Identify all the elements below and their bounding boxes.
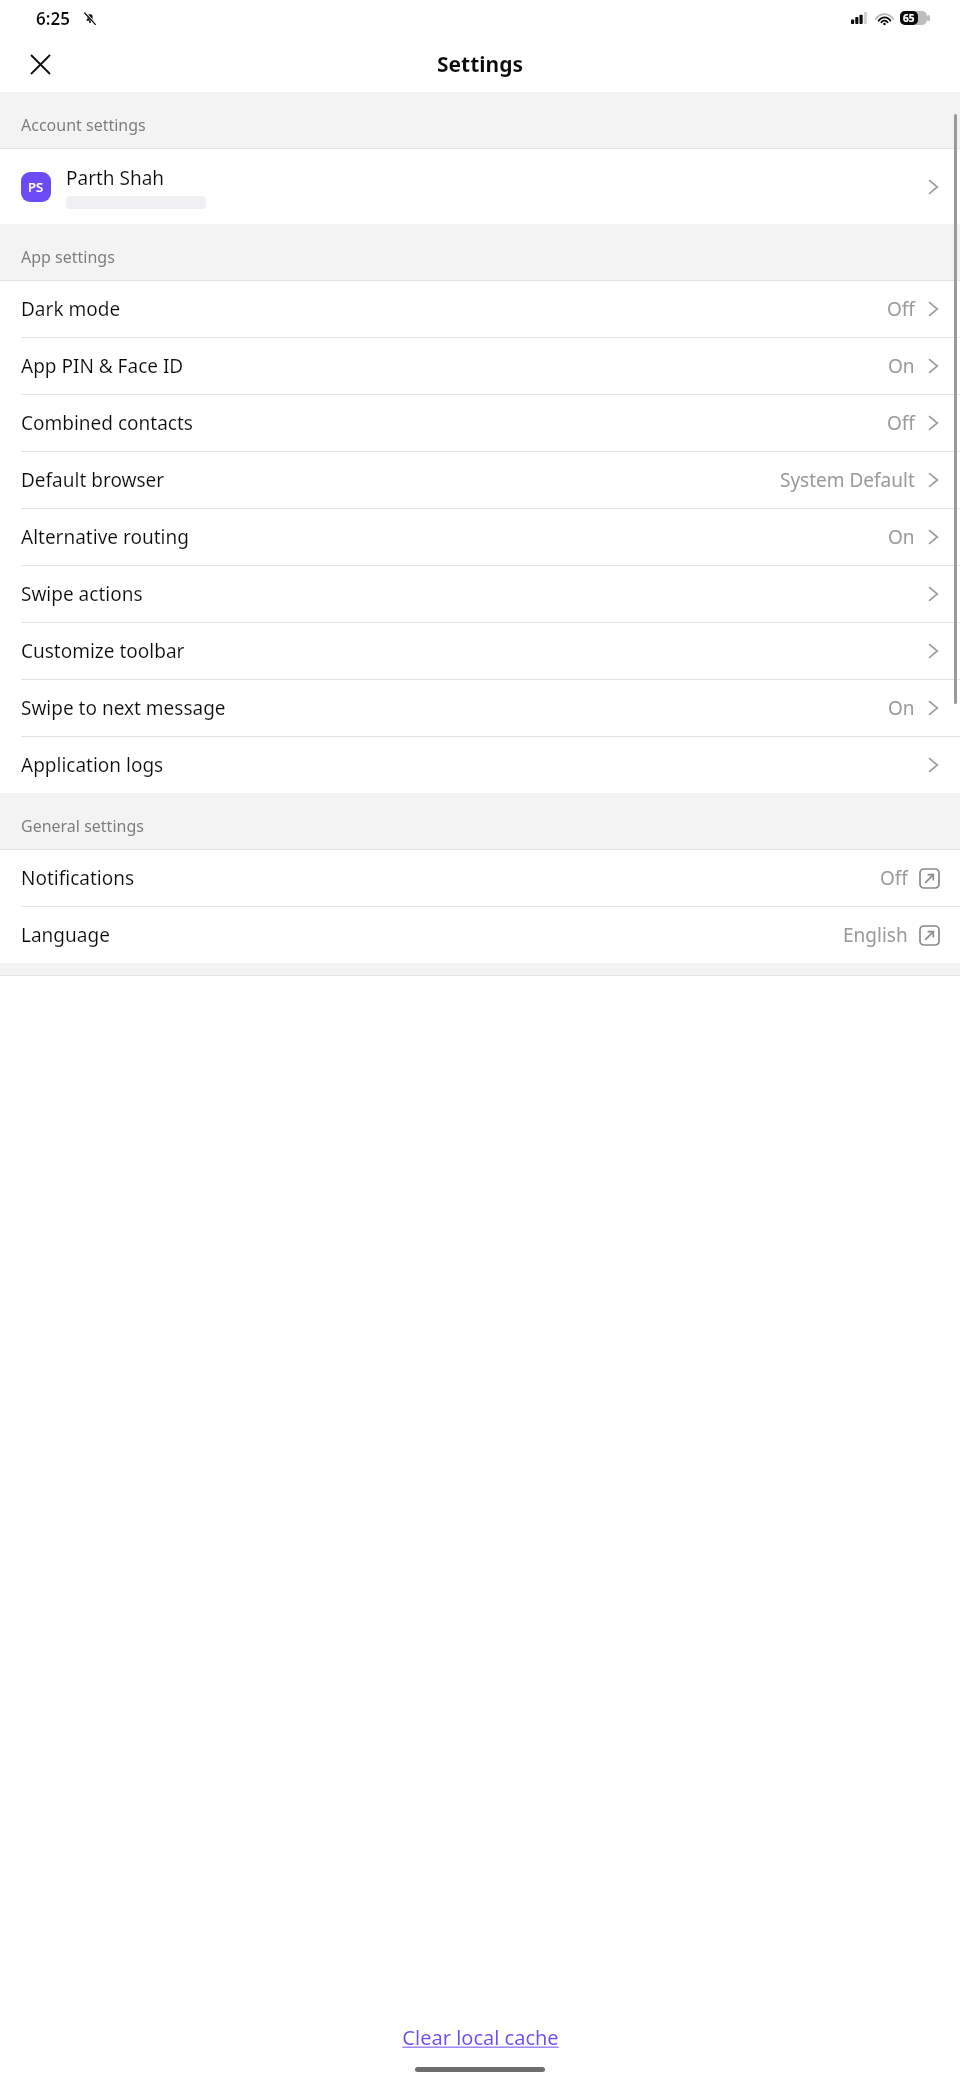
- staticText: PS: [28, 178, 44, 196]
- button[interactable]: PS: [0, 149, 960, 224]
- staticText: App PIN & Face ID: [21, 353, 888, 379]
- staticText: Customize toolbar: [21, 638, 928, 664]
- staticText: Language: [21, 922, 843, 948]
- staticText: 6:25: [36, 7, 70, 30]
- staticText: Settings: [437, 50, 524, 79]
- staticText: English: [843, 922, 908, 948]
- staticText: Off: [887, 410, 915, 436]
- staticText: Application logs: [21, 752, 928, 778]
- staticText: Swipe to next message: [21, 695, 888, 721]
- staticText: Parth Shah: [66, 165, 165, 191]
- staticText: On: [888, 695, 915, 721]
- button[interactable]: Swipe to next message: [0, 680, 960, 736]
- staticText: 65: [903, 11, 915, 25]
- staticText: Clear local cache: [402, 2024, 559, 2051]
- staticText: Notifications: [21, 865, 880, 891]
- staticText: App settings: [21, 246, 115, 268]
- button[interactable]: App PIN & Face ID: [0, 338, 960, 394]
- button[interactable]: Default browser: [0, 452, 960, 508]
- staticText: On: [888, 524, 915, 550]
- button[interactable]: Alternative routing: [0, 509, 960, 565]
- staticText: Off: [887, 296, 915, 322]
- staticText: General settings: [21, 815, 144, 837]
- button[interactable]: Customize toolbar: [0, 623, 960, 679]
- staticText: Dark mode: [21, 296, 887, 322]
- button[interactable]: Language: [0, 907, 960, 963]
- button[interactable]: Application logs: [0, 737, 960, 793]
- staticText: Alternative routing: [21, 524, 888, 550]
- staticText: System Default: [780, 467, 915, 493]
- staticText: Default browser: [21, 467, 780, 493]
- button[interactable]: Clear local cache: [394, 2021, 567, 2054]
- staticText: Off: [880, 865, 908, 891]
- staticText: Combined contacts: [21, 410, 887, 436]
- button[interactable]: Dark mode: [0, 281, 960, 337]
- button[interactable]: Combined contacts: [0, 395, 960, 451]
- button[interactable]: Notifications: [0, 850, 960, 906]
- button[interactable]: Swipe actions: [0, 566, 960, 622]
- staticText: On: [888, 353, 915, 379]
- staticText: Account settings: [21, 114, 146, 136]
- button[interactable]: Close: [20, 44, 60, 84]
- staticText: Swipe actions: [21, 581, 928, 607]
